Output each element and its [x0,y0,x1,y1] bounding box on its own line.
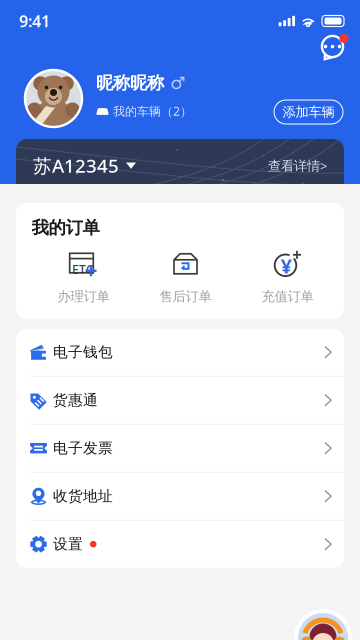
button[interactable]: ¥ [236,249,338,305]
staticText: 设置 [53,535,83,553]
staticText: 货惠通 [53,391,98,409]
staticText: 充值订单 [261,288,313,305]
staticText: ETC [72,261,94,277]
staticText: 我的车辆（2） [113,103,192,119]
staticText: 添加车辆 [282,104,334,120]
button[interactable]: 电子发票 [16,425,344,473]
staticText: 昵称昵称 [96,72,164,94]
staticText: 我的订单 [31,217,99,238]
staticText: 查看详情> [268,157,328,174]
button[interactable]: 收货地址 [16,473,344,521]
button[interactable]: 查看详情> [268,157,328,174]
button[interactable]: 苏A12345 [33,153,137,178]
staticText: ♂ [170,73,186,93]
button[interactable]: 设置 [16,521,344,568]
button[interactable]: 电子钱包 [16,329,344,377]
staticText: 售后订单 [159,288,211,305]
staticText: 办理订单 [57,288,109,305]
staticText: 9:41 [19,10,50,32]
button[interactable]: ETC [32,249,134,305]
button[interactable]: 售后订单 [134,249,236,305]
staticText: 收货地址 [53,487,113,505]
button[interactable]: 添加车辆 [274,100,343,124]
staticText: 电子发票 [53,439,113,457]
staticText: 电子钱包 [53,343,113,361]
button[interactable]: Messages [319,34,348,62]
staticText: 苏A12345 [33,153,119,178]
button[interactable]: Customer service [294,609,352,640]
staticText: ¥ [280,252,291,279]
button[interactable]: 货惠通 [16,377,344,425]
